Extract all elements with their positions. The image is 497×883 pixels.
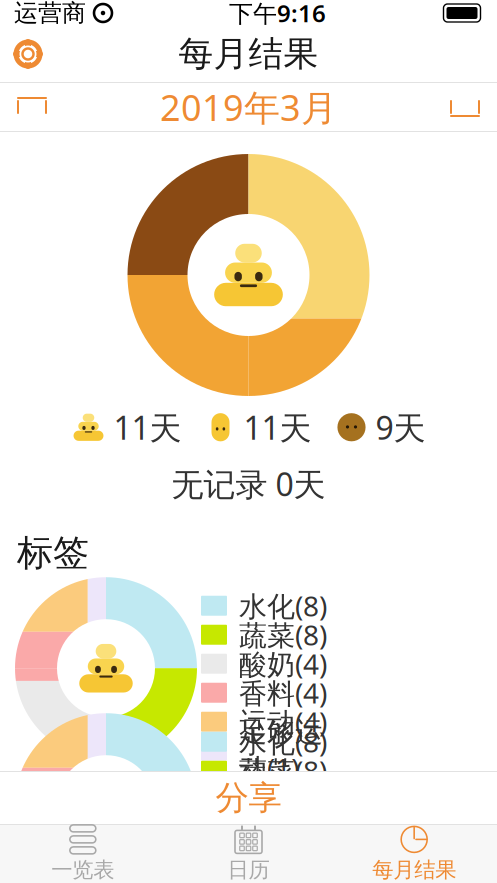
button[interactable]: 分享 <box>0 772 497 824</box>
staticText: 蔬菜(8) <box>239 752 327 789</box>
staticText: 下午9:16 <box>229 0 326 29</box>
staticText: 蔬菜(8) <box>239 616 327 653</box>
staticText: 每月结果 <box>178 33 318 75</box>
staticText: 香料(4) <box>239 810 327 847</box>
staticText: 酸奶(4) <box>239 781 327 818</box>
staticText: 每月结果 <box>372 857 456 883</box>
staticText: 一览表 <box>51 857 114 883</box>
staticText: 水化(8) <box>239 587 327 624</box>
staticText: 足够运动(1) <box>239 851 323 883</box>
staticText: 水化(8) <box>239 723 327 760</box>
button[interactable]: 每月结果 <box>331 825 497 883</box>
button[interactable]: 日历 <box>166 825 331 883</box>
staticText: 分享 <box>215 777 281 818</box>
staticText: 足够运动(1) <box>239 715 323 786</box>
staticText: 9天 <box>367 406 425 448</box>
staticText: 运动(4) <box>239 703 327 740</box>
button[interactable]: 上个月 <box>0 88 64 126</box>
staticText: 11天 <box>105 406 181 448</box>
button[interactable]: 一览表 <box>0 825 166 883</box>
staticText: 运营商 <box>14 0 86 28</box>
staticText: 11天 <box>235 406 311 448</box>
staticText: 酸奶(4) <box>239 645 327 682</box>
staticText: 2019年3月 <box>160 83 337 131</box>
staticText: 运动(4) <box>239 839 327 876</box>
button[interactable]: 设置 <box>0 30 56 78</box>
button[interactable]: 下个月 <box>433 88 497 126</box>
staticText: 香料(4) <box>239 674 327 711</box>
staticText: 无记录 0天 <box>171 462 325 505</box>
staticText: 日历 <box>227 857 269 883</box>
staticText: 标签 <box>17 531 89 575</box>
